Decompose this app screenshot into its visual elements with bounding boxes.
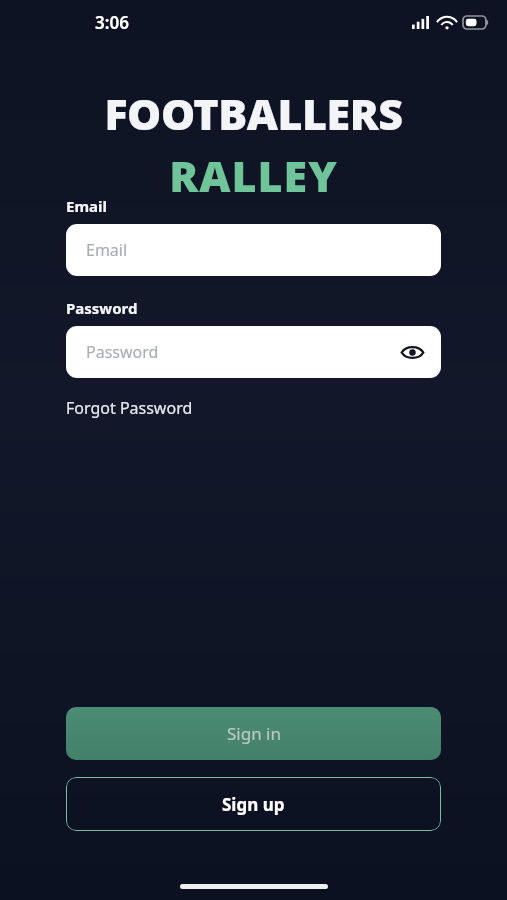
staticText: Email <box>86 239 128 261</box>
staticText: Password <box>66 298 138 318</box>
staticText: Password <box>86 341 159 363</box>
button[interactable]: Forgot Password <box>66 397 193 419</box>
button[interactable]: Email <box>66 224 441 276</box>
staticText: Forgot Password <box>66 397 193 419</box>
staticText: RALLEY <box>169 146 338 205</box>
button[interactable]: Sign up <box>66 777 441 831</box>
button[interactable]: Password <box>66 326 441 378</box>
button[interactable]: Show password <box>395 335 429 369</box>
staticText: Email <box>66 196 107 216</box>
staticText: Sign up <box>222 793 285 816</box>
staticText: FOOTBALLERS <box>104 84 403 143</box>
button[interactable]: Sign in <box>66 707 441 760</box>
staticText: 3:06 <box>95 11 129 34</box>
staticText: Sign in <box>227 722 281 745</box>
